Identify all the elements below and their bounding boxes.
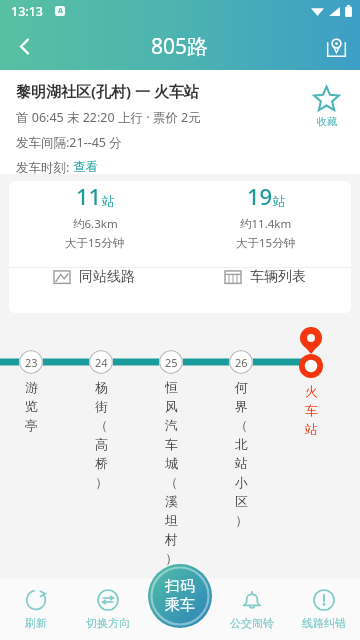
staticText: 同站线路: [79, 268, 135, 286]
button[interactable]: 11: [9, 181, 180, 251]
staticText: 坦: [165, 512, 178, 528]
button[interactable]: 切换方向: [72, 589, 144, 630]
staticText: 车辆列表: [250, 268, 306, 286]
staticText: 汽: [165, 417, 178, 433]
staticText: 桥: [95, 455, 108, 471]
staticText: 站: [305, 421, 318, 437]
button[interactable]: 刷新: [0, 589, 72, 630]
staticText: 13:13: [11, 3, 44, 20]
staticText: 刷新: [25, 616, 47, 630]
staticText: 亭: [25, 417, 38, 433]
button[interactable]: 19: [180, 181, 351, 251]
staticText: 站: [235, 455, 248, 471]
staticText: 查看: [73, 159, 98, 174]
button[interactable]: Back: [0, 22, 48, 70]
button[interactable]: 23: [19, 350, 43, 374]
staticText: ）: [235, 512, 248, 528]
button[interactable]: 收藏: [313, 85, 340, 128]
staticText: A: [58, 6, 63, 16]
staticText: 何: [235, 379, 248, 395]
staticText: 览: [25, 398, 38, 414]
staticText: 11: [76, 181, 102, 211]
staticText: 村: [165, 531, 178, 547]
staticText: 车: [165, 436, 178, 452]
button[interactable]: 线路纠错: [288, 589, 360, 630]
staticText: 乘车: [165, 596, 195, 615]
staticText: 扫码: [165, 577, 195, 596]
staticText: 站: [102, 193, 115, 209]
staticText: 首 06:45 末 22:20 上行 · 票价 2元: [16, 109, 201, 126]
staticText: 高: [95, 436, 108, 452]
staticText: 火: [305, 383, 318, 399]
staticText: 约11.4km: [240, 216, 292, 232]
button[interactable]: 查看: [73, 159, 98, 174]
staticText: 24: [95, 355, 108, 370]
staticText: ）: [165, 550, 178, 566]
staticText: 线路纠错: [302, 616, 346, 630]
staticText: 站: [273, 193, 286, 209]
staticText: 车: [305, 402, 318, 418]
button[interactable]: 25: [159, 350, 183, 374]
button[interactable]: 同站线路: [9, 268, 180, 286]
staticText: 恒: [165, 379, 178, 395]
staticText: 区: [235, 493, 248, 509]
staticText: 收藏: [317, 115, 337, 128]
button[interactable]: 扫码: [148, 564, 212, 628]
staticText: 切换方向: [86, 616, 130, 630]
staticText: 风: [165, 398, 178, 414]
staticText: 游: [25, 379, 38, 395]
button[interactable]: 车辆列表: [180, 268, 351, 286]
staticText: 发车时刻:: [16, 159, 73, 174]
staticText: 小: [235, 474, 248, 490]
staticText: 界: [235, 398, 248, 414]
staticText: 城: [165, 455, 178, 471]
staticText: 19: [247, 181, 273, 211]
staticText: 杨: [95, 379, 108, 395]
staticText: 25: [165, 355, 178, 370]
staticText: 约6.3km: [73, 216, 118, 232]
staticText: 23: [25, 355, 38, 370]
button[interactable]: [299, 354, 323, 378]
staticText: ）: [95, 474, 108, 490]
staticText: （: [165, 474, 178, 490]
staticText: 发车间隔:21--45 分: [16, 134, 122, 151]
staticText: （: [95, 417, 108, 433]
button[interactable]: 24: [89, 350, 113, 374]
staticText: 北: [235, 436, 248, 452]
staticText: 大于15分钟: [65, 235, 125, 251]
other: Destination: [300, 327, 322, 354]
staticText: （: [235, 417, 248, 433]
staticText: 溪: [165, 493, 178, 509]
staticText: 街: [95, 398, 108, 414]
staticText: 26: [235, 355, 248, 370]
button[interactable]: Map: [312, 22, 360, 70]
staticText: 大于15分钟: [236, 235, 296, 251]
staticText: 805路: [151, 32, 209, 61]
button[interactable]: 26: [229, 350, 253, 374]
staticText: 公交闹铃: [230, 616, 274, 630]
staticText: 黎明湖社区(孔村) 一 火车站: [16, 81, 199, 101]
button[interactable]: 公交闹铃: [216, 589, 288, 630]
